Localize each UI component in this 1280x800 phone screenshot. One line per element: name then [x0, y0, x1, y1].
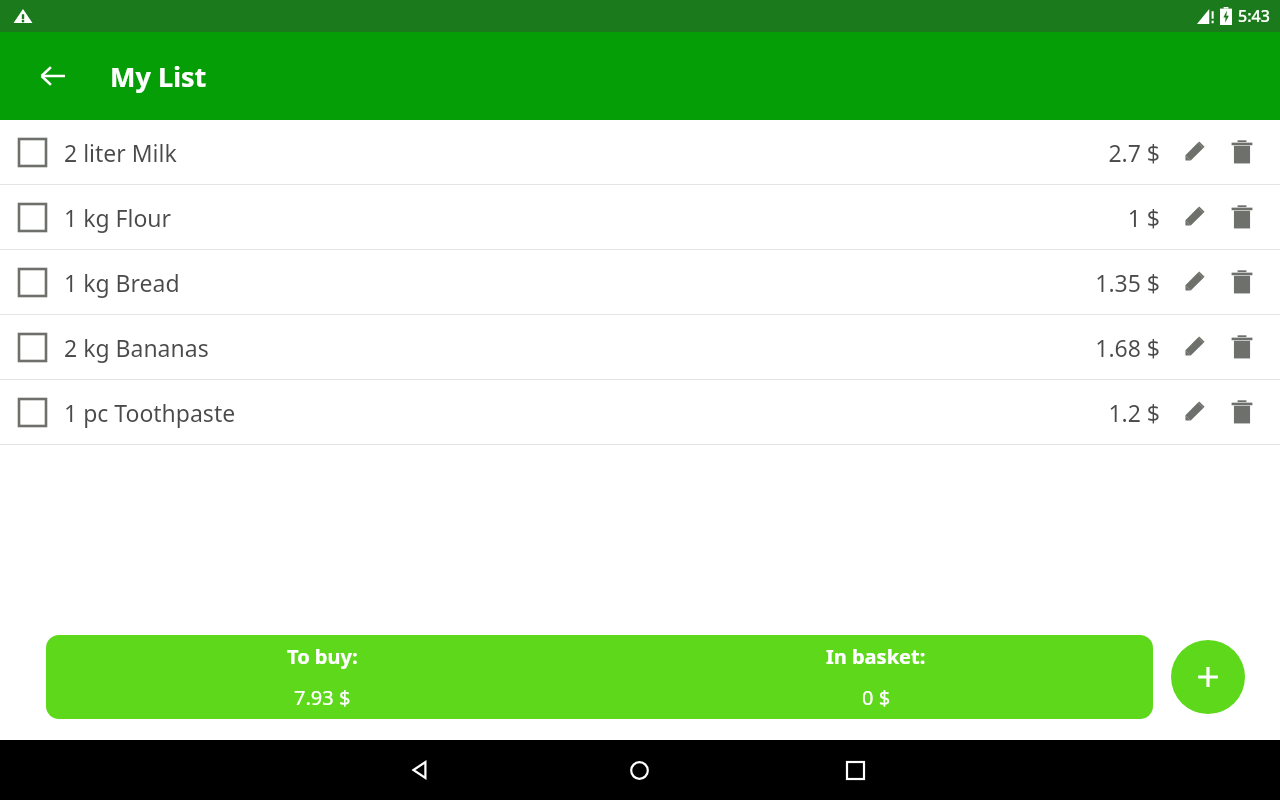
- staticText: In basket:: [826, 643, 926, 670]
- button[interactable]: Toggle 1 kg Flour: [8, 193, 56, 241]
- button[interactable]: Edit 1 kg Bread: [1172, 260, 1216, 304]
- button[interactable]: Edit 2 liter Milk: [1172, 130, 1216, 174]
- button[interactable]: Delete 2 kg Bananas: [1220, 325, 1264, 369]
- button[interactable]: Delete 1 kg Flour: [1220, 195, 1264, 239]
- button[interactable]: Back: [398, 747, 444, 793]
- staticText: 2.7 $: [1108, 137, 1160, 168]
- button[interactable]: Toggle 2 kg Bananas: [0, 315, 1280, 380]
- button[interactable]: Toggle 2 liter Milk: [8, 128, 56, 176]
- staticText: To buy:: [287, 643, 358, 670]
- button[interactable]: Back: [24, 47, 82, 105]
- staticText: 0 $: [862, 684, 891, 711]
- button[interactable]: Recent apps: [832, 747, 878, 793]
- button[interactable]: Toggle 1 kg Bread: [8, 258, 56, 306]
- button[interactable]: Toggle 1 pc Toothpaste: [8, 388, 56, 436]
- button[interactable]: Edit 1 kg Flour: [1172, 195, 1216, 239]
- staticText: 1.68 $: [1095, 332, 1160, 363]
- button[interactable]: Toggle 2 kg Bananas: [8, 323, 56, 371]
- button[interactable]: Edit 1 pc Toothpaste: [1172, 390, 1216, 434]
- staticText: 1 kg Bread: [64, 267, 180, 298]
- button[interactable]: Add item: [1171, 640, 1245, 714]
- staticText: 5:43: [1238, 5, 1270, 27]
- button[interactable]: Delete 1 kg Bread: [1220, 260, 1264, 304]
- staticText: 1 pc Toothpaste: [64, 397, 236, 428]
- staticText: 2 kg Bananas: [64, 332, 209, 363]
- staticText: 2 liter Milk: [64, 137, 177, 168]
- button[interactable]: Home: [616, 747, 662, 793]
- button[interactable]: Delete 2 liter Milk: [1220, 130, 1264, 174]
- button[interactable]: Toggle 2 liter Milk: [0, 120, 1280, 185]
- staticText: 1 kg Flour: [64, 202, 172, 233]
- button[interactable]: Toggle 1 pc Toothpaste: [0, 380, 1280, 445]
- staticText: 1 $: [1127, 202, 1160, 233]
- staticText: 1.35 $: [1095, 267, 1160, 298]
- button[interactable]: To buy:: [46, 635, 1153, 719]
- staticText: 7.93 $: [294, 684, 351, 711]
- button[interactable]: Toggle 1 kg Bread: [0, 250, 1280, 315]
- button[interactable]: Toggle 1 kg Flour: [0, 185, 1280, 250]
- button[interactable]: Delete 1 pc Toothpaste: [1220, 390, 1264, 434]
- staticText: 1.2 $: [1108, 397, 1160, 428]
- button[interactable]: Edit 2 kg Bananas: [1172, 325, 1216, 369]
- staticText: My List: [110, 58, 207, 95]
